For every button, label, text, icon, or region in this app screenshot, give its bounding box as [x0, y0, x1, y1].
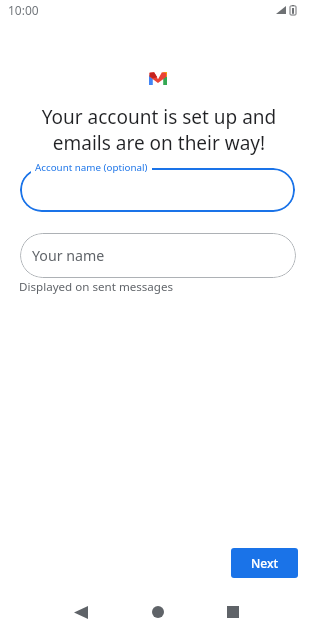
staticText: Account name (optional) — [35, 161, 148, 174]
button[interactable]: Recent apps — [209, 593, 257, 631]
staticText: Your account is set up and emails are on… — [1, 104, 316, 155]
button[interactable]: Home — [134, 593, 182, 631]
staticText: Next — [251, 555, 279, 571]
button[interactable] — [20, 168, 295, 212]
button[interactable]: Next — [231, 548, 298, 578]
button[interactable]: Your name — [20, 233, 296, 278]
button[interactable]: Back — [57, 593, 105, 631]
staticText: Displayed on sent messages — [19, 279, 174, 295]
staticText: Your name — [32, 246, 105, 265]
other: Battery — [290, 5, 296, 15]
other: Signal strength — [276, 6, 286, 14]
staticText: 10:00 — [8, 2, 39, 18]
